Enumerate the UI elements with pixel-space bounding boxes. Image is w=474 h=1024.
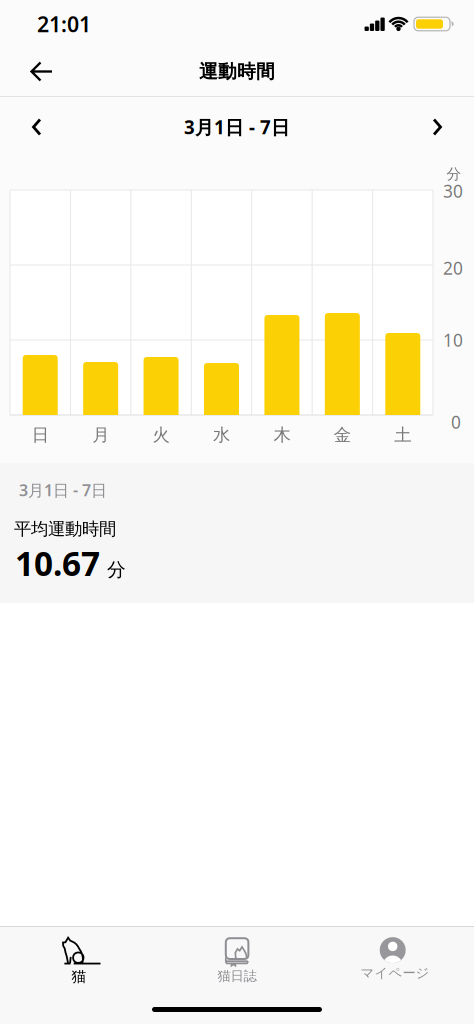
staticText: 木: [273, 424, 290, 446]
staticText: 3月1日 - 7日: [19, 479, 107, 501]
staticText: 平均運動時間: [14, 518, 116, 540]
staticText: 運動時間: [199, 60, 275, 83]
button[interactable]: 猫: [24, 930, 134, 986]
staticText: 水: [213, 424, 230, 446]
staticText: 金: [334, 424, 351, 446]
staticText: マイページ: [360, 965, 429, 981]
staticText: 21:01: [37, 10, 91, 38]
staticText: 10: [443, 328, 463, 351]
staticText: 30: [443, 179, 463, 202]
button[interactable]: マイページ: [340, 930, 450, 986]
staticText: 0: [451, 410, 461, 433]
staticText: 土: [394, 424, 411, 446]
staticText: 猫日誌: [217, 968, 256, 984]
button[interactable]: [15, 96, 59, 158]
staticText: 日: [32, 424, 49, 446]
staticText: 火: [153, 424, 170, 446]
staticText: 20: [443, 256, 463, 279]
staticText: 分: [107, 558, 126, 581]
staticText: 月: [92, 424, 109, 446]
button[interactable]: [415, 96, 459, 158]
staticText: 10.67: [15, 541, 100, 585]
staticText: 猫: [71, 967, 86, 985]
staticText: 3月1日 - 7日: [184, 115, 290, 139]
button[interactable]: 猫日誌: [182, 930, 292, 986]
button[interactable]: [21, 47, 63, 96]
staticText: 分: [446, 165, 461, 183]
